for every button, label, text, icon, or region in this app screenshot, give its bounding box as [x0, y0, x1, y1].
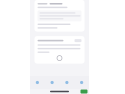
button[interactable]: Profile — [74, 76, 89, 89]
button[interactable]: Activity — [59, 76, 74, 89]
button[interactable]: Home — [30, 76, 45, 89]
button[interactable]: Search — [45, 76, 60, 89]
